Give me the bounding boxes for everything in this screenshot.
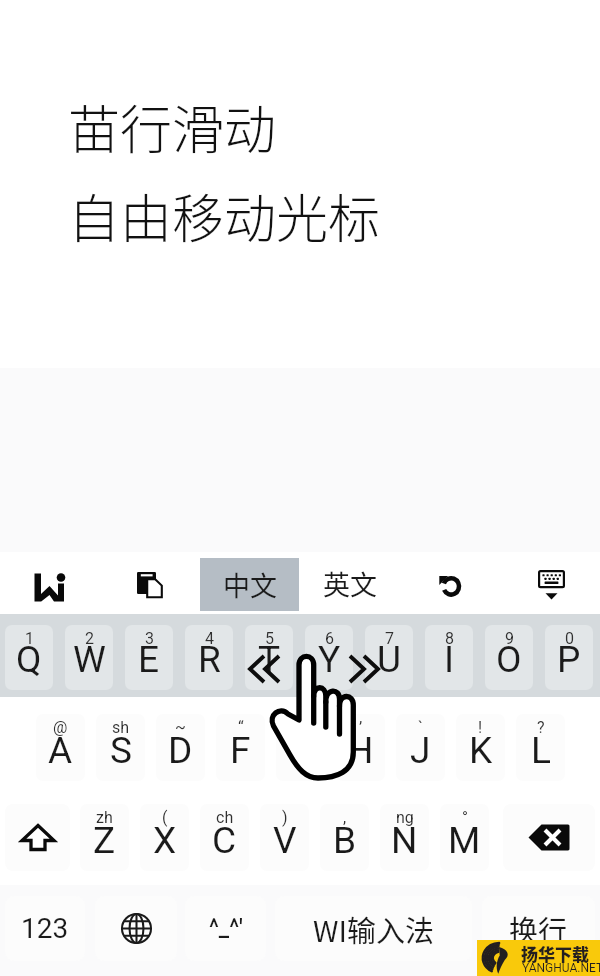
button[interactable]: 换行 bbox=[482, 896, 595, 961]
button[interactable]: Clipboard bbox=[100, 552, 200, 614]
staticText: Z bbox=[93, 819, 116, 862]
staticText: Y bbox=[318, 638, 341, 681]
staticText: D bbox=[168, 729, 193, 772]
staticText: A bbox=[48, 729, 73, 772]
staticText: H bbox=[347, 729, 374, 772]
button[interactable]: “ bbox=[216, 714, 265, 781]
staticText: WI输入法 bbox=[313, 908, 434, 950]
button[interactable]: ’ bbox=[336, 714, 385, 781]
staticText: ‘ bbox=[299, 718, 303, 737]
staticText: 苗行滑动 bbox=[68, 89, 277, 164]
staticText: P bbox=[557, 638, 581, 681]
button[interactable]: 5 bbox=[245, 625, 293, 690]
button[interactable]: 8 bbox=[425, 625, 473, 690]
staticText: @ bbox=[53, 718, 68, 737]
staticText: 2 bbox=[85, 629, 94, 648]
button[interactable]: sh bbox=[96, 714, 145, 781]
staticText: 5 bbox=[265, 629, 274, 648]
staticText: ^_^' bbox=[209, 915, 243, 942]
button[interactable]: WI输入法 bbox=[275, 896, 472, 961]
staticText: R bbox=[198, 638, 221, 681]
button[interactable]: 4 bbox=[185, 625, 233, 690]
button[interactable]: 6 bbox=[305, 625, 353, 690]
staticText: 自由移动光标 bbox=[68, 178, 381, 253]
button[interactable]: 1 bbox=[5, 625, 53, 690]
staticText: W bbox=[73, 638, 106, 681]
staticText: sh bbox=[112, 718, 130, 737]
staticText: L bbox=[531, 729, 551, 772]
staticText: C bbox=[212, 819, 237, 862]
staticText: ! bbox=[478, 718, 483, 737]
button[interactable]: ? bbox=[516, 714, 565, 781]
staticText: ` bbox=[418, 718, 423, 737]
staticText: X bbox=[153, 819, 177, 862]
staticText: YANGHUA.NET bbox=[522, 961, 600, 975]
staticText: T bbox=[258, 638, 281, 681]
staticText: S bbox=[110, 729, 132, 772]
button[interactable]: Shift bbox=[5, 804, 70, 871]
staticText: , bbox=[343, 808, 347, 827]
button[interactable]: , bbox=[320, 804, 369, 871]
button[interactable]: ! bbox=[456, 714, 505, 781]
staticText: N bbox=[391, 819, 418, 862]
staticText: 换行 bbox=[509, 908, 568, 950]
staticText: 3 bbox=[145, 629, 154, 648]
button[interactable]: 0 bbox=[545, 625, 593, 690]
staticText: G bbox=[288, 729, 314, 772]
button[interactable]: WI input method bbox=[0, 552, 100, 614]
staticText: 扬华下载 bbox=[521, 941, 589, 966]
button[interactable]: ^_^' bbox=[185, 896, 266, 961]
staticText: 123 bbox=[21, 912, 69, 945]
button[interactable]: Undo bbox=[400, 552, 500, 614]
staticText: ~ bbox=[175, 718, 186, 737]
button[interactable]: ‘ bbox=[276, 714, 325, 781]
button[interactable]: ) bbox=[260, 804, 309, 871]
staticText: Q bbox=[16, 638, 42, 681]
button[interactable]: 9 bbox=[485, 625, 533, 690]
button[interactable]: ( bbox=[140, 804, 189, 871]
button[interactable]: Backspace bbox=[503, 804, 595, 871]
button[interactable]: @ bbox=[36, 714, 85, 781]
staticText: 英文 bbox=[323, 564, 377, 603]
button[interactable]: 3 bbox=[125, 625, 173, 690]
staticText: ) bbox=[282, 808, 288, 827]
button[interactable]: ch bbox=[200, 804, 249, 871]
staticText: B bbox=[333, 819, 357, 862]
staticText: 9 bbox=[505, 629, 514, 648]
button[interactable]: ~ bbox=[156, 714, 205, 781]
button[interactable]: ° bbox=[440, 804, 489, 871]
staticText: ch bbox=[216, 808, 234, 827]
staticText: F bbox=[230, 729, 251, 772]
staticText: ? bbox=[537, 718, 545, 737]
staticText: 中文 bbox=[223, 565, 277, 604]
staticText: ng bbox=[396, 808, 414, 827]
staticText: K bbox=[469, 729, 493, 772]
staticText: O bbox=[496, 638, 522, 681]
staticText: ° bbox=[462, 808, 468, 827]
staticText: I bbox=[444, 638, 455, 681]
staticText: 4 bbox=[205, 629, 214, 648]
staticText: 7 bbox=[385, 629, 394, 648]
button[interactable]: ` bbox=[396, 714, 445, 781]
button[interactable]: Switch language bbox=[95, 896, 177, 961]
staticText: U bbox=[377, 638, 401, 681]
staticText: ( bbox=[162, 808, 168, 827]
button[interactable]: 中文 bbox=[200, 558, 299, 611]
staticText: J bbox=[410, 729, 431, 772]
staticText: V bbox=[273, 819, 297, 862]
staticText: ’ bbox=[359, 718, 363, 737]
button[interactable]: Hide keyboard bbox=[500, 552, 600, 614]
staticText: zh bbox=[96, 808, 113, 827]
button[interactable]: 2 bbox=[65, 625, 113, 690]
button[interactable]: zh bbox=[80, 804, 129, 871]
staticText: M bbox=[448, 819, 481, 862]
button[interactable]: 英文 bbox=[300, 552, 400, 614]
button[interactable]: 7 bbox=[365, 625, 413, 690]
button[interactable]: ng bbox=[380, 804, 429, 871]
staticText: “ bbox=[238, 718, 244, 737]
staticText: 0 bbox=[565, 629, 574, 648]
staticText: 6 bbox=[325, 629, 334, 648]
staticText: 1 bbox=[25, 629, 34, 648]
staticText: E bbox=[138, 638, 160, 681]
button[interactable]: 123 bbox=[5, 896, 85, 961]
